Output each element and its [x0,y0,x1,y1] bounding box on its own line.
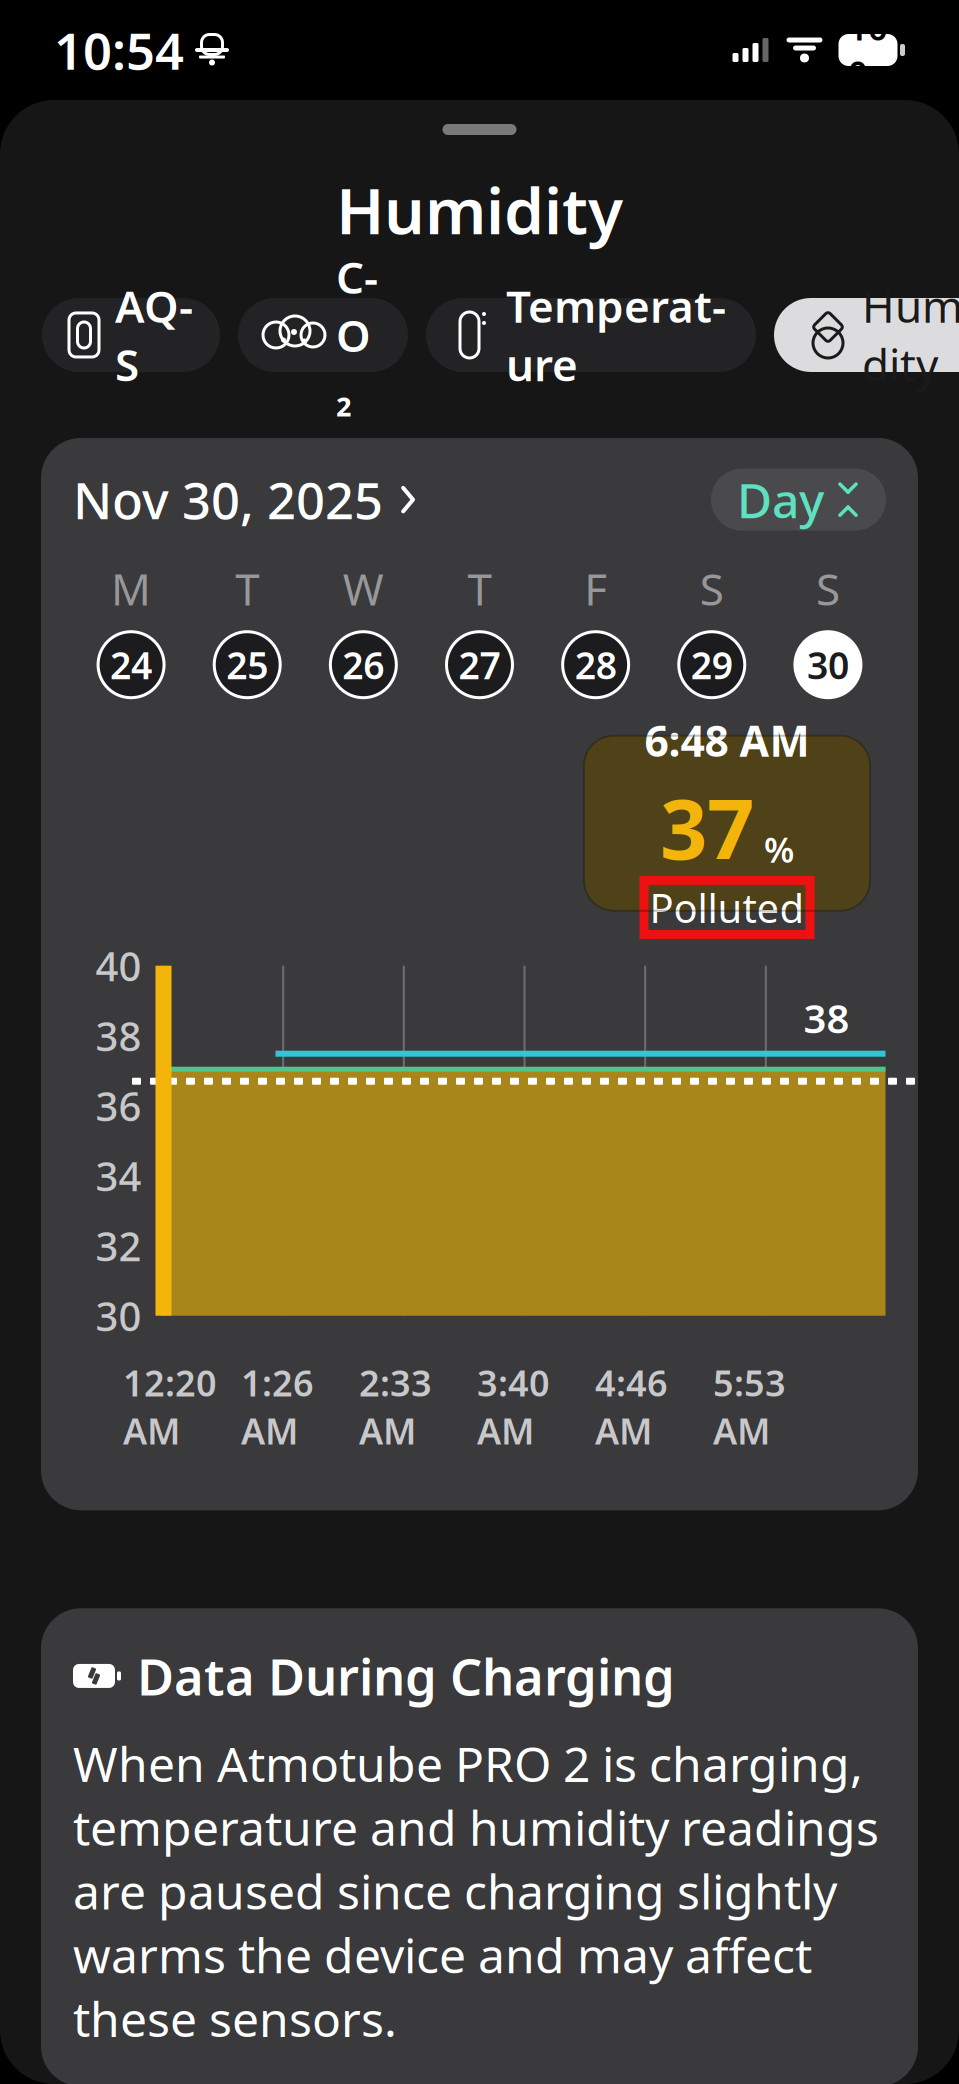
staticText: 36 [95,1079,141,1132]
staticText: Data During Charging [137,1642,675,1710]
staticText: 37 [660,773,754,882]
staticText: 1:26 AM [241,1359,314,1454]
staticText: 6:48 AM [644,712,809,769]
staticText: S [700,559,724,618]
button[interactable]: F [538,559,654,698]
button[interactable]: T [189,559,305,698]
button[interactable]: T [421,559,537,698]
staticText: 4:46 AM [595,1359,668,1454]
staticText: 10:54 [54,16,184,84]
staticText: 30 [807,640,849,689]
staticText: 25 [226,640,268,689]
staticText: T [235,559,259,618]
staticText: 32 [95,1219,141,1272]
staticText: % [764,826,794,872]
staticText: 38 [803,991,849,1044]
button[interactable]: Nov 30, 2025 [73,466,417,533]
staticText: 29 [691,640,733,689]
staticText: 5:53 AM [713,1359,786,1454]
button[interactable]: Humidity [774,298,959,372]
staticText: 24 [110,640,152,689]
button[interactable]: Temperature [426,298,756,372]
staticText: 27 [458,640,500,689]
staticText: Day [737,468,824,531]
staticText: 2:33 AM [359,1359,432,1454]
button[interactable]: CO₂ [238,298,408,372]
staticText: 26 [342,640,384,689]
staticText: Polluted [649,881,804,934]
staticText: When Atmotube PRO 2 is charging, tempera… [73,1732,879,2050]
button[interactable]: AQS [42,298,220,372]
staticText: 28 [575,640,617,689]
button[interactable]: Day [711,469,886,531]
staticText: 40 [95,939,141,992]
staticText: M [111,559,151,618]
staticText: Humidity [862,277,959,393]
staticText: 34 [95,1149,141,1202]
staticText: S [816,559,840,618]
staticText: Nov 30, 2025 [73,466,383,533]
staticText: CO₂ [336,247,378,423]
staticText: 100 [848,4,888,96]
staticText: F [584,559,607,618]
staticText: W [343,559,384,618]
staticText: 12:20 AM [123,1359,217,1454]
button[interactable]: S [770,559,886,698]
staticText: Temperature [506,277,726,393]
staticText: 30 [95,1289,141,1342]
staticText: T [467,559,491,618]
staticText: Humidity [336,167,623,252]
button[interactable]: S [654,559,770,698]
staticText: AQS [115,277,193,393]
button[interactable]: M [73,559,189,698]
staticText: 3:40 AM [477,1359,550,1454]
staticText: 38 [95,1009,141,1062]
button[interactable]: W [305,559,421,698]
